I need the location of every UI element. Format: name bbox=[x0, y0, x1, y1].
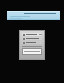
button[interactable] bbox=[23, 49, 41, 54]
button[interactable] bbox=[22, 41, 42, 44]
button[interactable] bbox=[22, 33, 42, 36]
button[interactable] bbox=[22, 37, 42, 40]
button[interactable] bbox=[7, 11, 60, 20]
